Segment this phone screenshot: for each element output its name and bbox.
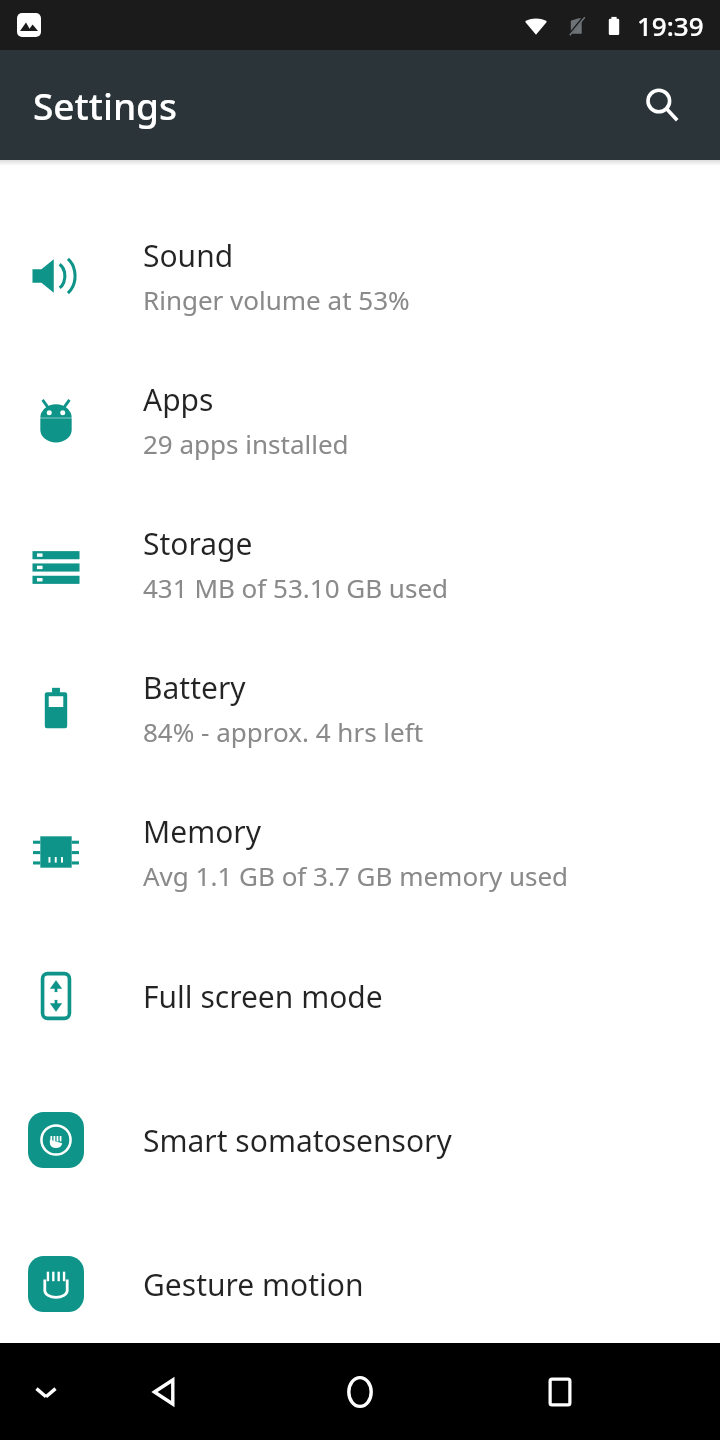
button[interactable]: Apps (0, 348, 720, 492)
button[interactable]: Back (128, 1356, 200, 1428)
button[interactable]: Storage (0, 492, 720, 636)
staticText: Apps (143, 379, 214, 420)
button[interactable]: Gesture motion (0, 1212, 720, 1356)
button[interactable]: Smart somatosensory (0, 1068, 720, 1212)
button[interactable]: Memory (0, 780, 720, 924)
staticText: 84% - approx. 4 hrs left (143, 714, 424, 749)
staticText: Settings (33, 80, 178, 130)
staticText: Gesture motion (143, 1264, 364, 1305)
staticText: Smart somatosensory (143, 1120, 452, 1161)
button[interactable]: Recents (524, 1356, 596, 1428)
staticText: Avg 1.1 GB of 3.7 GB memory used (143, 858, 569, 893)
button[interactable]: Full screen mode (0, 924, 720, 1068)
staticText: Sound (143, 235, 234, 276)
button[interactable]: Sound (0, 204, 720, 348)
button[interactable]: Hide (10, 1356, 82, 1428)
button[interactable]: Home (324, 1356, 396, 1428)
staticText: Memory (143, 811, 262, 852)
staticText: 431 MB of 53.10 GB used (143, 570, 449, 605)
staticText: 19:39 (637, 8, 704, 43)
staticText: Battery (143, 667, 246, 708)
staticText: Full screen mode (143, 976, 383, 1017)
staticText: Storage (143, 523, 253, 564)
staticText: 29 apps installed (143, 426, 349, 461)
button[interactable]: Battery (0, 636, 720, 780)
staticText: Ringer volume at 53% (143, 282, 410, 317)
button[interactable]: Search (630, 73, 694, 137)
